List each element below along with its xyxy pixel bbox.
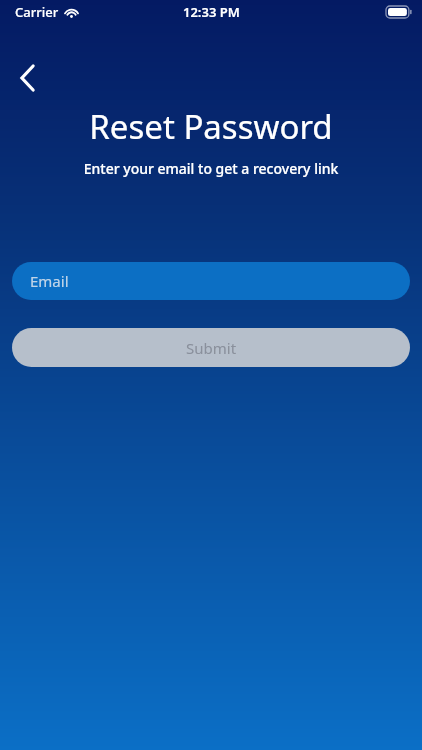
staticText: Carrier	[15, 3, 59, 21]
button[interactable]: Submit	[12, 328, 410, 367]
staticText: Submit	[186, 338, 237, 358]
staticText: Enter your email to get a recovery link	[0, 159, 422, 178]
button[interactable]: Back	[8, 58, 48, 98]
staticText: Email	[30, 271, 69, 291]
staticText: 12:33 PM	[183, 3, 240, 21]
button[interactable]: Email	[12, 262, 410, 300]
staticText: Reset Password	[0, 104, 422, 149]
